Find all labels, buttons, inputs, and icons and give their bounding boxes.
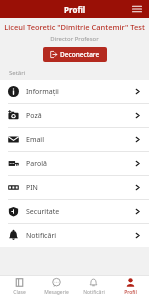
button[interactable]: Informații	[0, 80, 149, 103]
staticText: Mesagerie	[44, 289, 69, 296]
staticText: Securitate	[26, 207, 134, 217]
button[interactable]: PIN	[0, 176, 149, 199]
button[interactable]: Email	[0, 128, 149, 151]
staticText: Setări	[9, 69, 26, 77]
button[interactable]: Poză	[0, 104, 149, 127]
staticText: Profil	[124, 289, 137, 296]
staticText: Clase	[13, 289, 26, 296]
button[interactable]: Mesagerie	[38, 275, 75, 300]
button[interactable]: Deconectare	[43, 47, 107, 62]
staticText: Email	[26, 135, 134, 145]
button[interactable]: Parolă	[0, 152, 149, 175]
staticText: Profil	[64, 4, 86, 15]
button[interactable]: Notificări	[0, 224, 149, 247]
button[interactable]: Notificări	[75, 275, 112, 300]
staticText: Liceul Teoretic "Dimitrie Cantemir" Test	[4, 22, 145, 32]
staticText: Parolă	[26, 159, 134, 169]
staticText: Notificări	[83, 289, 105, 296]
button[interactable]: Securitate	[0, 200, 149, 223]
staticText: PIN	[26, 183, 134, 193]
button[interactable]: Clase	[0, 275, 38, 300]
staticText: Director Profesor	[50, 35, 99, 43]
staticText: Deconectare	[60, 50, 100, 59]
button[interactable]: Profil	[112, 275, 149, 300]
button[interactable]: Menu	[129, 1, 145, 17]
staticText: Informații	[26, 87, 134, 97]
staticText: Poză	[26, 111, 134, 121]
staticText: Notificări	[26, 231, 134, 241]
